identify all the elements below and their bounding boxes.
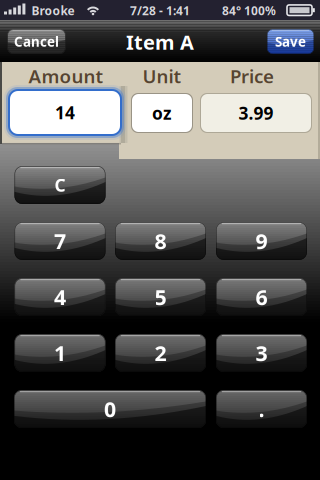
button[interactable]: 0 <box>14 390 206 428</box>
staticText: Cancel <box>14 33 59 50</box>
staticText: Price <box>230 64 274 88</box>
button[interactable]: C <box>14 166 105 204</box>
button[interactable]: 1 <box>14 334 105 372</box>
button[interactable]: Save <box>267 29 314 54</box>
button[interactable]: 3.99 <box>200 93 312 133</box>
staticText: 4 <box>54 283 66 311</box>
button[interactable]: 9 <box>216 222 307 260</box>
staticText: 0 <box>104 395 116 423</box>
staticText: 3 <box>255 339 267 367</box>
button[interactable]: 6 <box>216 278 307 316</box>
button[interactable]: 3 <box>216 334 307 372</box>
button[interactable]: Cancel <box>7 29 65 54</box>
button[interactable]: 2 <box>115 334 206 372</box>
staticText: 7/28 - 1:41 <box>130 2 190 18</box>
staticText: 3.99 <box>238 101 273 124</box>
button[interactable]: 4 <box>14 278 105 316</box>
button[interactable]: oz <box>131 93 193 133</box>
staticText: Unit <box>142 64 181 88</box>
staticText: . <box>258 395 264 423</box>
button[interactable]: 5 <box>115 278 206 316</box>
staticText: 8 <box>154 227 166 255</box>
staticText: 5 <box>154 283 166 311</box>
staticText: 14 <box>55 101 75 124</box>
staticText: 9 <box>255 227 267 255</box>
staticText: 2 <box>154 339 166 367</box>
button[interactable]: 7 <box>14 222 105 260</box>
staticText: 7 <box>54 227 66 255</box>
button[interactable]: 8 <box>115 222 206 260</box>
staticText: Save <box>275 33 306 50</box>
staticText: 84° 100% <box>222 2 276 18</box>
staticText: Brooke <box>31 2 74 18</box>
staticText: Item A <box>126 29 194 55</box>
staticText: C <box>54 173 65 196</box>
staticText: oz <box>152 101 172 124</box>
button[interactable]: 14 <box>4 85 126 140</box>
staticText: 1 <box>54 339 66 367</box>
staticText: Amount <box>28 64 103 88</box>
staticText: 6 <box>255 283 267 311</box>
button[interactable]: . <box>216 390 307 428</box>
